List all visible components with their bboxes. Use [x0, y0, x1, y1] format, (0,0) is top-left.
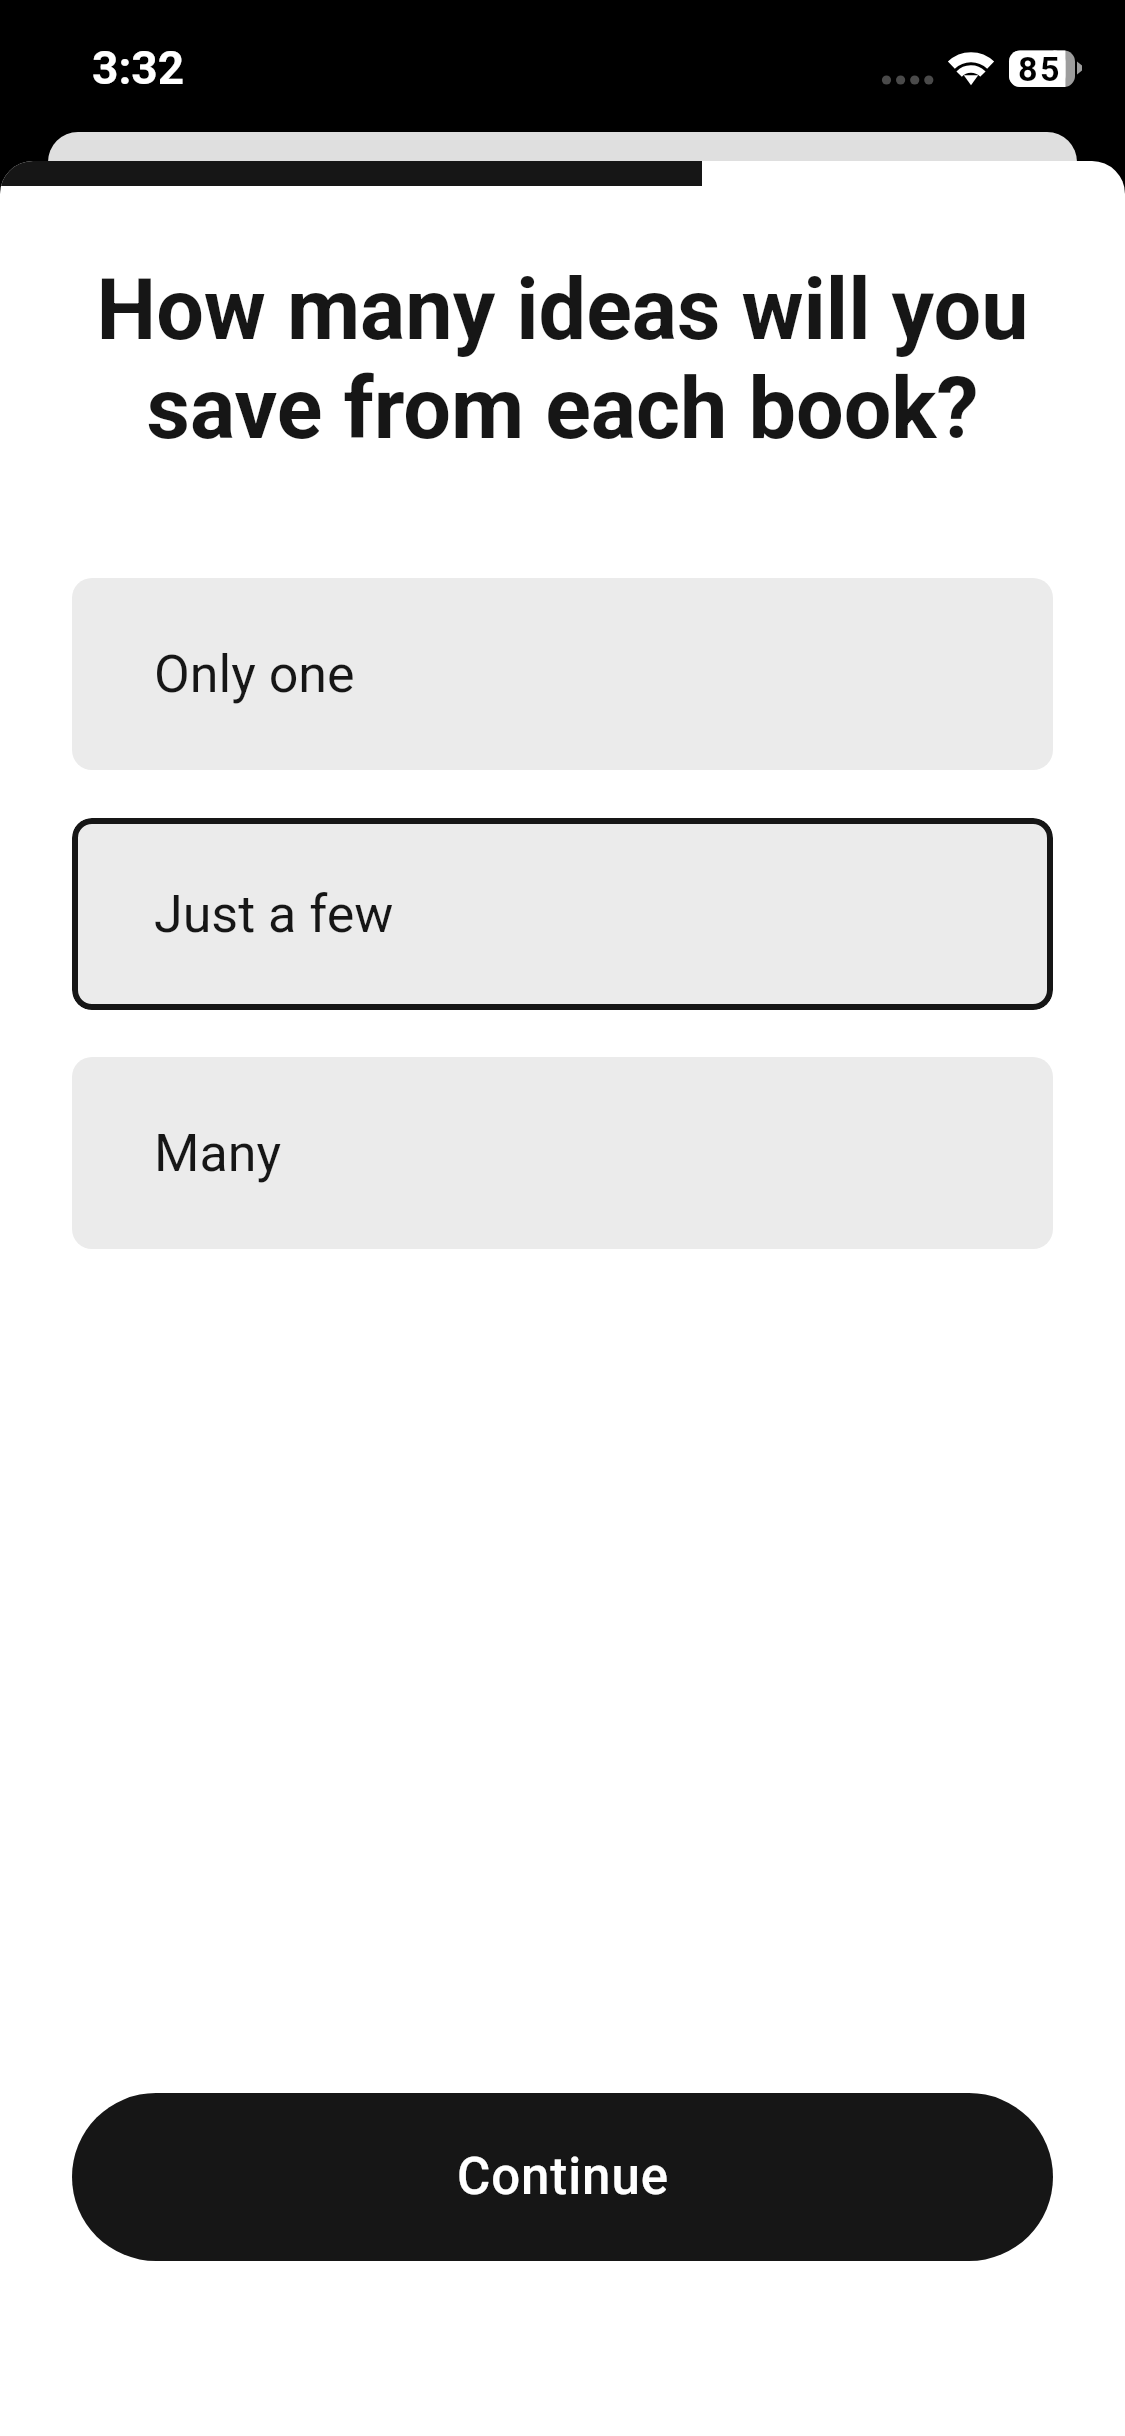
- staticText: 85: [1018, 49, 1063, 89]
- other: Cellular, Wi-Fi and battery status: [0, 0, 1125, 161]
- staticText: How many ideas will you save from each b…: [56, 261, 1069, 458]
- staticText: Just a few: [154, 884, 394, 945]
- staticText: 3:32: [92, 41, 185, 95]
- staticText: Only one: [154, 644, 355, 705]
- button[interactable]: Continue: [72, 2093, 1053, 2261]
- other: Progress 62 percent: [0, 161, 1125, 186]
- staticText: Many: [154, 1123, 282, 1184]
- button[interactable]: Only one: [72, 578, 1053, 770]
- staticText: Continue: [457, 2147, 669, 2207]
- button[interactable]: Just a few: [72, 818, 1053, 1010]
- button[interactable]: Many: [72, 1057, 1053, 1249]
